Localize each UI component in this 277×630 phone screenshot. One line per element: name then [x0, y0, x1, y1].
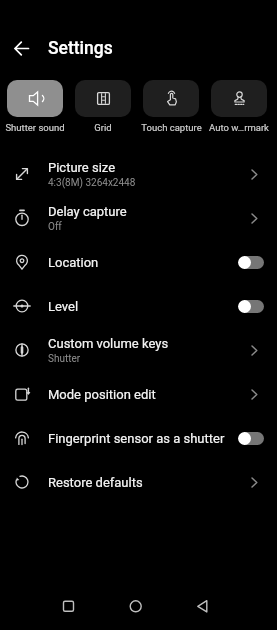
button[interactable]: Fingerprint sensor as a shutter — [0, 416, 277, 460]
staticText: Off — [48, 221, 62, 233]
staticText: Restore defaults — [48, 475, 143, 490]
button[interactable]: Picture size — [0, 152, 277, 196]
button[interactable] — [0, 32, 44, 64]
staticText: Settings — [48, 38, 113, 59]
staticText: Picture size — [48, 160, 116, 175]
button[interactable] — [0, 582, 93, 630]
button[interactable]: Restore defaults — [0, 460, 277, 504]
button[interactable] — [238, 300, 264, 313]
staticText: Touch capture — [141, 122, 202, 133]
staticText: Mode position edit — [48, 387, 156, 402]
staticText: Auto w…rmark — [209, 122, 269, 133]
staticText: Location — [48, 255, 99, 270]
button[interactable]: Location — [0, 240, 277, 284]
button[interactable]: Custom volume keys — [0, 328, 277, 372]
staticText: Fingerprint sensor as a shutter — [48, 431, 225, 446]
staticText: Grid — [94, 122, 112, 133]
staticText: Shutter sound — [5, 122, 65, 133]
button[interactable] — [238, 432, 264, 445]
button[interactable] — [93, 582, 185, 630]
staticText: Delay capture — [48, 204, 127, 219]
staticText: Shutter — [48, 353, 81, 365]
button[interactable] — [75, 80, 131, 117]
button[interactable] — [185, 582, 277, 630]
staticText: Level — [48, 299, 79, 314]
button[interactable]: Delay capture — [0, 196, 277, 240]
button[interactable] — [7, 80, 63, 117]
button[interactable] — [143, 80, 199, 117]
staticText: 4:3(8M) 3264x2448 — [48, 177, 136, 189]
button[interactable]: Level — [0, 284, 277, 328]
button[interactable] — [238, 256, 264, 269]
button[interactable] — [211, 80, 267, 117]
button[interactable]: Mode position edit — [0, 372, 277, 416]
staticText: Custom volume keys — [48, 336, 169, 351]
